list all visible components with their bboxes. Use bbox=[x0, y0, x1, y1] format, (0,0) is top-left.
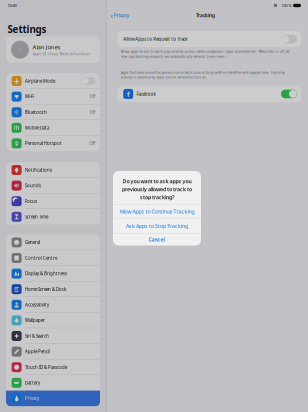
button[interactable]: AJ bbox=[0, 36, 106, 63]
staticText: Wallpaper bbox=[25, 317, 45, 323]
staticText: Privacy bbox=[114, 12, 129, 19]
staticText: Mobile Data bbox=[25, 125, 49, 131]
staticText: Control Centre bbox=[25, 255, 57, 261]
staticText: Focus bbox=[25, 198, 37, 204]
button[interactable]: Apple Pencil bbox=[6, 344, 100, 359]
staticText: Apple Pencil bbox=[25, 349, 50, 355]
staticText: Allow Apps to Request to Track bbox=[123, 36, 187, 42]
staticText: Settings bbox=[7, 22, 46, 36]
button[interactable]: Privacy bbox=[6, 391, 100, 406]
staticText: Battery bbox=[25, 380, 40, 386]
staticText: Tracking bbox=[196, 12, 215, 19]
staticText: Touch ID & Passcode bbox=[25, 364, 67, 370]
staticText: Alan Jones bbox=[32, 43, 60, 51]
staticText: Cancel bbox=[148, 236, 165, 243]
staticText: Home Screen & Dock bbox=[25, 286, 66, 292]
staticText: Allow apps to ask to track your activity… bbox=[121, 49, 290, 59]
staticText: 100 % bbox=[281, 3, 291, 8]
button[interactable]: Wi-Fi bbox=[6, 89, 100, 104]
button[interactable]: Bluetooth bbox=[6, 104, 100, 120]
staticText: Apple ID, iCloud, Media & Purchases bbox=[32, 52, 90, 56]
button[interactable]: Notifications bbox=[6, 162, 100, 178]
staticText: ‹ bbox=[111, 10, 113, 20]
button[interactable]: Screen Time bbox=[6, 209, 100, 225]
staticText: Personal Hotspot bbox=[25, 140, 62, 146]
button[interactable]: Control Centre bbox=[6, 250, 100, 266]
button[interactable]: Mobile Data bbox=[6, 120, 100, 136]
staticText: Apps that have asked for permission to t… bbox=[121, 70, 285, 80]
button[interactable]: Cancel bbox=[113, 233, 201, 245]
button[interactable]: Ask Apps to Stop Tracking bbox=[113, 218, 201, 233]
button[interactable]: Siri & Search bbox=[6, 328, 100, 344]
staticText: Ask Apps to Stop Tracking bbox=[126, 222, 188, 229]
staticText: Notifications bbox=[25, 167, 52, 173]
button[interactable]: Display & Brightness bbox=[6, 266, 100, 281]
staticText: 10:40 bbox=[7, 3, 16, 8]
button[interactable]: Sounds bbox=[6, 178, 100, 193]
staticText: Facebook bbox=[137, 91, 156, 97]
staticText: Privacy bbox=[25, 395, 39, 401]
button[interactable]: Touch ID & Passcode bbox=[6, 359, 100, 375]
staticText: Bluetooth bbox=[25, 109, 47, 115]
staticText: stop tracking? bbox=[140, 194, 174, 201]
staticText: Sounds bbox=[25, 183, 41, 189]
staticText: AJ bbox=[18, 46, 22, 53]
button[interactable]: Personal Hotspot bbox=[6, 136, 100, 151]
button[interactable]: Accessibility bbox=[6, 297, 100, 313]
staticText: Wi-Fi bbox=[25, 94, 34, 100]
staticText: Siri & Search bbox=[25, 333, 49, 339]
staticText: General bbox=[25, 239, 40, 245]
button[interactable]: ‹ bbox=[107, 8, 129, 22]
button[interactable]: Airplane Mode bbox=[6, 73, 100, 89]
button[interactable]: Focus bbox=[6, 193, 100, 209]
staticText: Screen Time bbox=[25, 214, 48, 220]
button[interactable]: Allow Apps to Continue Tracking bbox=[113, 204, 201, 218]
staticText: previously allowed to track to bbox=[122, 186, 192, 193]
button[interactable]: Battery bbox=[6, 375, 100, 391]
staticText: Allow Apps to Continue Tracking bbox=[119, 208, 194, 215]
staticText: Airplane Mode bbox=[25, 78, 55, 84]
staticText: Display & Brightness bbox=[25, 271, 67, 277]
staticText: Do you want to ask apps you bbox=[122, 178, 191, 185]
button[interactable]: Home Screen & Dock bbox=[6, 281, 100, 297]
staticText: Accessibility bbox=[25, 302, 49, 308]
button[interactable]: General bbox=[6, 235, 100, 250]
staticText: Off bbox=[89, 140, 95, 146]
staticText: Off bbox=[89, 94, 95, 100]
button[interactable]: Wallpaper bbox=[6, 313, 100, 328]
staticText: Off bbox=[89, 109, 95, 115]
